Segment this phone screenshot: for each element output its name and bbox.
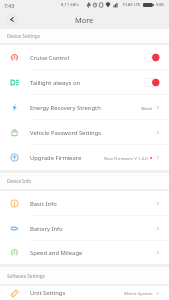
- staticText: Unit Settings: [30, 289, 66, 297]
- staticText: Software Settings: [7, 273, 45, 279]
- button[interactable]: Toggle: [144, 78, 160, 87]
- staticText: Cruise Control: [30, 54, 70, 62]
- staticText: 7:43: [4, 2, 15, 9]
- staticText: Upgrade Firmware: [30, 154, 82, 162]
- button[interactable]: Upgrade Firmware: [0, 145, 169, 170]
- staticText: Vehicle Password Settings: [30, 129, 102, 137]
- staticText: More: [75, 15, 94, 25]
- button[interactable]: Back: [6, 14, 17, 25]
- button[interactable]: Speed and Mileage: [0, 241, 169, 264]
- button[interactable]: Basic Info: [0, 191, 169, 216]
- staticText: 94%: [156, 2, 165, 8]
- staticText: Energy Recovery Strength: [30, 104, 101, 112]
- staticText: PLAY LTE: [123, 2, 141, 8]
- button[interactable]: Energy Recovery Strength: [0, 95, 169, 120]
- button[interactable]: Toggle: [144, 53, 160, 62]
- button[interactable]: Unit Settings: [0, 286, 169, 300]
- button[interactable]: Taillight always on: [0, 70, 169, 95]
- staticText: Device Info: [7, 178, 32, 184]
- button[interactable]: Battery Info: [0, 216, 169, 241]
- staticText: Metric System: [124, 290, 153, 296]
- staticText: Taillight always on: [30, 79, 81, 87]
- staticText: Speed and Mileage: [30, 249, 83, 257]
- staticText: 8,11 kB/s: [61, 2, 79, 8]
- staticText: Weak: [141, 105, 153, 111]
- staticText: Battery Info: [30, 225, 63, 233]
- button[interactable]: Vehicle Password Settings: [0, 120, 169, 145]
- staticText: Basic Info: [30, 200, 57, 208]
- button[interactable]: Cruise Control: [0, 45, 169, 70]
- staticText: Device Settings: [7, 33, 40, 39]
- staticText: New Firmware V 1.4.0: [104, 155, 148, 161]
